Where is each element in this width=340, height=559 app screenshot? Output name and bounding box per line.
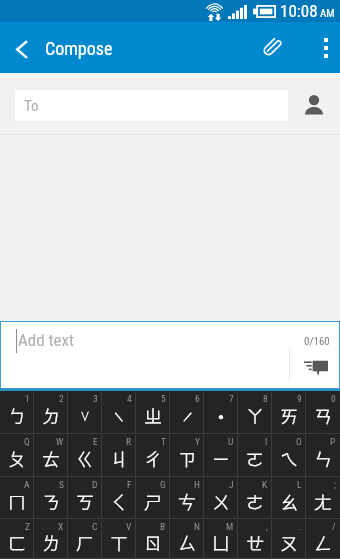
button[interactable]: 0 bbox=[306, 391, 340, 434]
staticText: V bbox=[126, 521, 132, 532]
button[interactable]: U bbox=[204, 434, 238, 477]
button[interactable]: 5 bbox=[136, 391, 170, 434]
button[interactable]: S bbox=[34, 477, 68, 519]
staticText: Add text bbox=[18, 330, 75, 350]
button[interactable]: L bbox=[272, 477, 306, 519]
staticText: 6 bbox=[195, 393, 200, 404]
staticText: , bbox=[266, 521, 268, 532]
button[interactable]: B bbox=[136, 519, 170, 559]
staticText: Q bbox=[24, 436, 30, 447]
button[interactable]: , bbox=[238, 519, 272, 559]
staticText: C bbox=[92, 521, 98, 532]
staticText: 3 bbox=[93, 393, 98, 404]
button[interactable]: M bbox=[204, 519, 238, 559]
button[interactable]: 3 bbox=[68, 391, 102, 434]
button[interactable]: N bbox=[170, 519, 204, 559]
staticText: 1 bbox=[25, 393, 30, 404]
staticText: 7 bbox=[229, 393, 234, 404]
staticText: 0/160 bbox=[304, 335, 330, 348]
button[interactable]: Back bbox=[0, 22, 44, 73]
button[interactable]: J bbox=[204, 477, 238, 519]
button[interactable]: T bbox=[136, 434, 170, 477]
staticText: H bbox=[194, 479, 200, 490]
button[interactable]: E bbox=[68, 434, 102, 477]
staticText: 10:08 bbox=[280, 1, 318, 21]
button[interactable]: More options bbox=[298, 22, 340, 73]
staticText: ㄖ bbox=[144, 530, 162, 555]
staticText: 8 bbox=[263, 393, 268, 404]
staticText: S bbox=[59, 479, 64, 490]
staticText: ㄗ bbox=[178, 446, 196, 471]
button[interactable]: Contacts bbox=[292, 73, 336, 135]
button[interactable]: R bbox=[102, 434, 136, 477]
staticText: U bbox=[228, 436, 234, 447]
staticText: ㄊ bbox=[42, 446, 60, 471]
button[interactable]: X bbox=[34, 519, 68, 559]
button[interactable]: 8 bbox=[238, 391, 272, 434]
button[interactable]: I bbox=[238, 434, 272, 477]
button[interactable]: D bbox=[68, 477, 102, 519]
staticText: ㄙ bbox=[178, 530, 196, 555]
button[interactable]: 1 bbox=[0, 391, 34, 434]
button[interactable]: 9 bbox=[272, 391, 306, 434]
staticText: 5 bbox=[161, 393, 166, 404]
button[interactable]: C bbox=[68, 519, 102, 559]
staticText: ; bbox=[334, 479, 336, 490]
staticText: 2 bbox=[59, 393, 64, 404]
button[interactable]: F bbox=[102, 477, 136, 519]
button[interactable]: To bbox=[15, 90, 288, 121]
staticText: ㄘ bbox=[178, 489, 196, 514]
staticText: Z bbox=[25, 521, 30, 532]
staticText: ㄣ bbox=[314, 446, 332, 471]
staticText: 9 bbox=[297, 393, 302, 404]
staticText: X bbox=[58, 521, 64, 532]
button[interactable]: H bbox=[170, 477, 204, 519]
staticText: ㄆ bbox=[8, 446, 26, 471]
button[interactable]: Send message bbox=[295, 353, 337, 381]
staticText: ㄢ bbox=[314, 403, 332, 428]
staticText: ㄚ bbox=[246, 403, 264, 428]
staticText: O bbox=[296, 436, 302, 447]
staticText: . bbox=[299, 521, 302, 532]
button[interactable]: 7 bbox=[204, 391, 238, 434]
button[interactable]: Y bbox=[170, 434, 204, 477]
staticText: R bbox=[126, 436, 132, 447]
button[interactable]: Z bbox=[0, 519, 34, 559]
staticText: ㄍ bbox=[76, 446, 94, 471]
button[interactable]: P bbox=[306, 434, 340, 477]
staticText: ㄐ bbox=[110, 446, 128, 471]
staticText: J bbox=[229, 479, 234, 490]
staticText: ㄓ bbox=[144, 403, 162, 428]
staticText: ㄑ bbox=[110, 489, 128, 514]
button[interactable]: ; bbox=[306, 477, 340, 519]
button[interactable]: W bbox=[34, 434, 68, 477]
staticText: ㄅ bbox=[8, 403, 26, 428]
button[interactable]: K bbox=[238, 477, 272, 519]
button[interactable]: 4 bbox=[102, 391, 136, 434]
staticText: ㄎ bbox=[76, 489, 94, 514]
button[interactable]: A bbox=[0, 477, 34, 519]
button[interactable]: Q bbox=[0, 434, 34, 477]
button[interactable]: 2 bbox=[34, 391, 68, 434]
staticText: To bbox=[24, 97, 39, 115]
staticText: ㄜ bbox=[246, 489, 264, 514]
button[interactable]: 6 bbox=[170, 391, 204, 434]
staticText: ㄔ bbox=[144, 446, 162, 471]
staticText: D bbox=[92, 479, 98, 490]
button[interactable]: V bbox=[102, 519, 136, 559]
button[interactable]: . bbox=[272, 519, 306, 559]
staticText: A bbox=[24, 479, 30, 490]
staticText: ㄌ bbox=[42, 530, 60, 555]
button[interactable]: / bbox=[306, 519, 340, 559]
staticText: ㄈ bbox=[8, 530, 26, 555]
staticText: ㄥ bbox=[314, 530, 332, 555]
staticText: ㄏ bbox=[76, 530, 94, 555]
staticText: ㄠ bbox=[280, 489, 298, 514]
button[interactable]: Attach bbox=[249, 22, 293, 73]
staticText: G bbox=[160, 479, 166, 490]
staticText: ㄛ bbox=[246, 446, 264, 471]
button[interactable]: O bbox=[272, 434, 306, 477]
button[interactable]: G bbox=[136, 477, 170, 519]
staticText: ㄩ bbox=[212, 530, 230, 555]
staticText: ㄝ bbox=[246, 530, 264, 555]
